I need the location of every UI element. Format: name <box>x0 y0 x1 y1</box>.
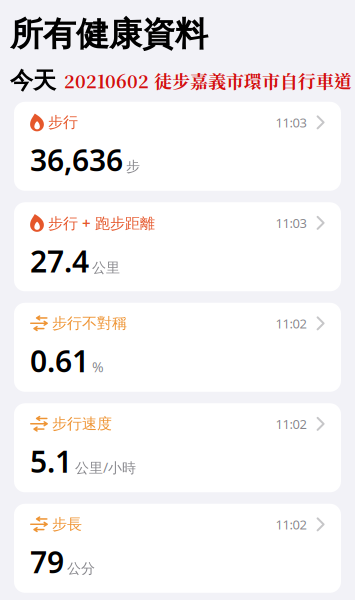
staticText: 27.4 <box>30 241 89 281</box>
staticText: 11:03 <box>276 114 307 131</box>
button[interactable]: 步行速度 <box>14 403 341 492</box>
staticText: 公分 <box>67 560 95 577</box>
staticText: 所有健康資料 <box>10 14 208 54</box>
staticText: 步行 + 跑步距離 <box>48 213 155 233</box>
staticText: 步行速度 <box>52 415 112 433</box>
staticText: 36,636 <box>30 140 123 179</box>
staticText: 公里 <box>92 259 120 276</box>
staticText: 11:03 <box>276 214 307 231</box>
staticText: 今天 <box>10 66 56 95</box>
staticText: 20210602 徒步嘉義市環市自行車道 <box>64 68 352 93</box>
staticText: 步 <box>126 158 140 175</box>
staticText: % <box>92 357 104 376</box>
staticText: 11:02 <box>276 516 307 533</box>
staticText: 步行不對稱 <box>52 314 127 333</box>
staticText: 11:02 <box>276 415 307 432</box>
staticText: 11:02 <box>276 315 307 332</box>
button[interactable]: 步長 <box>14 504 341 593</box>
staticText: 79 <box>30 542 64 581</box>
button[interactable]: 步行 <box>14 102 341 191</box>
staticText: 步行 <box>48 113 78 132</box>
button[interactable]: 步行 + 跑步距離 <box>14 202 341 291</box>
button[interactable]: 步行不對稱 <box>14 303 341 392</box>
staticText: 0.61 <box>30 341 89 380</box>
staticText: 步長 <box>52 515 82 534</box>
staticText: 公里/小時 <box>75 458 136 477</box>
staticText: 5.1 <box>30 441 72 481</box>
